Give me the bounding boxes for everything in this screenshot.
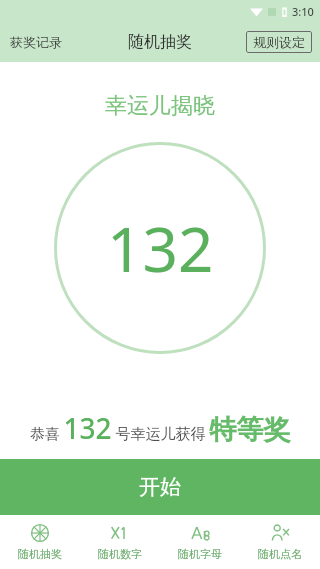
staticText: 恭喜 132 号幸运儿获得 特等奖	[4, 409, 316, 447]
staticText: 随机点名	[258, 547, 302, 561]
staticText: 随机抽奖	[128, 32, 192, 52]
other: 随机字母	[190, 523, 210, 543]
staticText: 规则设定	[253, 34, 305, 50]
staticText: 随机字母	[178, 547, 222, 561]
staticText: 3:10	[292, 4, 314, 19]
button[interactable]: 随机点名	[240, 515, 320, 569]
staticText: 随机抽奖	[18, 547, 62, 561]
staticText: 幸运儿揭晓	[105, 92, 215, 120]
button[interactable]: 随机数字	[80, 515, 160, 569]
button[interactable]: 随机字母	[160, 515, 240, 569]
other: 随机抽奖	[30, 523, 50, 543]
staticText: 开始	[139, 474, 181, 500]
staticText: 获奖记录	[10, 34, 62, 50]
button[interactable]: 开始	[0, 459, 320, 515]
button[interactable]: 随机抽奖	[0, 515, 80, 569]
button[interactable]: 获奖记录	[0, 26, 72, 58]
other: 随机点名	[270, 523, 290, 543]
button[interactable]: 规则设定	[246, 31, 312, 53]
other: 随机数字	[110, 523, 130, 543]
staticText: 随机数字	[98, 547, 142, 561]
staticText: 132	[107, 206, 214, 290]
